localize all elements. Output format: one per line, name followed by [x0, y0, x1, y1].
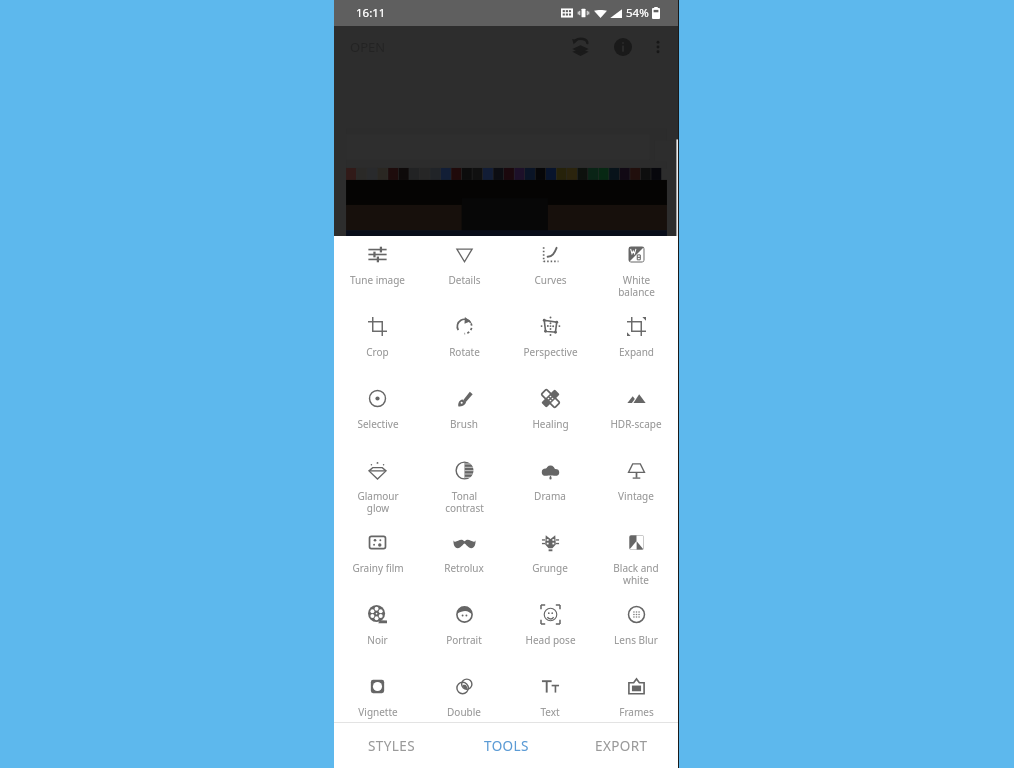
- button[interactable]: Tune image: [334, 236, 421, 308]
- button[interactable]: Rotate: [421, 308, 507, 380]
- staticText: Crop: [366, 345, 389, 359]
- staticText: Perspective: [523, 345, 578, 359]
- staticText: Vignette: [358, 705, 398, 719]
- button[interactable]: Lens Blur: [593, 596, 679, 668]
- button[interactable]: Head pose: [507, 596, 593, 668]
- button[interactable]: Drama: [507, 452, 593, 524]
- staticText: Details: [448, 273, 481, 287]
- button[interactable]: Noir: [334, 596, 421, 668]
- button[interactable]: Stacks: [564, 31, 596, 63]
- staticText: Frames: [619, 705, 654, 719]
- button[interactable]: EXPORT: [564, 723, 679, 768]
- staticText: Portrait: [446, 633, 482, 647]
- button[interactable]: Selective: [334, 380, 421, 452]
- staticText: Head pose: [525, 633, 576, 647]
- staticText: Double: [447, 705, 481, 719]
- staticText: Selective: [357, 417, 399, 431]
- button[interactable]: Crop: [334, 308, 421, 380]
- button[interactable]: Info: [607, 31, 639, 63]
- staticText: 16:11: [356, 5, 386, 21]
- staticText: EXPORT: [595, 737, 648, 755]
- button[interactable]: Healing: [507, 380, 593, 452]
- button[interactable]: Brush: [421, 380, 507, 452]
- staticText: Noir: [367, 633, 388, 647]
- staticText: Curves: [534, 273, 567, 287]
- staticText: Healing: [532, 417, 569, 431]
- staticText: Brush: [450, 417, 478, 431]
- button[interactable]: Text: [507, 668, 593, 722]
- button[interactable]: TOOLS: [449, 723, 564, 768]
- staticText: Grunge: [532, 561, 568, 575]
- staticText: Text: [540, 705, 560, 719]
- staticText: Black and white: [613, 561, 659, 587]
- staticText: Lens Blur: [614, 633, 658, 647]
- button[interactable]: HDR-scape: [593, 380, 679, 452]
- staticText: HDR-scape: [610, 417, 662, 431]
- button[interactable]: Expand: [593, 308, 679, 380]
- staticText: Tonal contrast: [445, 489, 484, 515]
- button[interactable]: Grainy film: [334, 524, 421, 596]
- button[interactable]: Details: [421, 236, 507, 308]
- staticText: Glamour glow: [357, 489, 399, 515]
- staticText: Grainy film: [352, 561, 404, 575]
- button[interactable]: Curves: [507, 236, 593, 308]
- button[interactable]: Double: [421, 668, 507, 722]
- button[interactable]: Glamour glow: [334, 452, 421, 524]
- staticText: Drama: [534, 489, 566, 503]
- staticText: Rotate: [449, 345, 480, 359]
- staticText: Vintage: [618, 489, 654, 503]
- button[interactable]: STYLES: [334, 723, 449, 768]
- button[interactable]: Tonal contrast: [421, 452, 507, 524]
- button[interactable]: Vignette: [334, 668, 421, 722]
- button[interactable]: Vintage: [593, 452, 679, 524]
- button[interactable]: Portrait: [421, 596, 507, 668]
- button[interactable]: Black and white: [593, 524, 679, 596]
- staticText: White balance: [618, 273, 655, 299]
- button[interactable]: Perspective: [507, 308, 593, 380]
- staticText: 54%: [626, 5, 649, 21]
- staticText: Expand: [619, 345, 654, 359]
- button[interactable]: Grunge: [507, 524, 593, 596]
- button[interactable]: Retrolux: [421, 524, 507, 596]
- staticText: TOOLS: [484, 737, 529, 755]
- button[interactable]: White balance: [593, 236, 679, 308]
- staticText: Retrolux: [444, 561, 484, 575]
- staticText: STYLES: [368, 737, 415, 755]
- staticText: Tune image: [350, 273, 405, 287]
- button[interactable]: Frames: [593, 668, 679, 722]
